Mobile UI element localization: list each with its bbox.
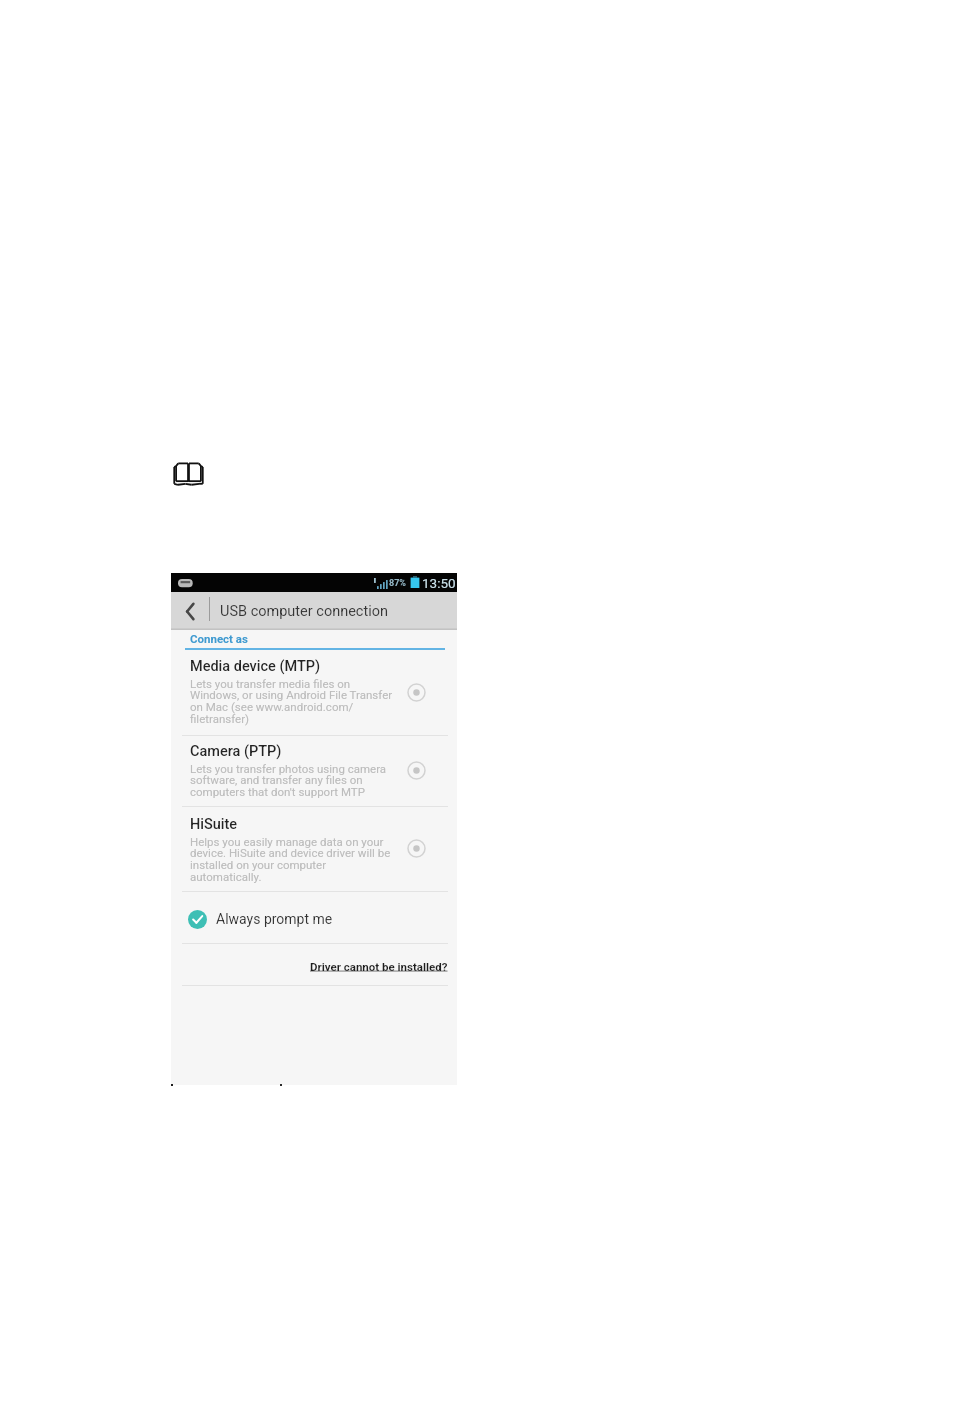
staticText: 13:50 [422, 575, 456, 591]
staticText: Helps you easily manage data on your dev… [190, 835, 397, 884]
button[interactable]: Select Camera (PTP) [405, 759, 427, 781]
button[interactable]: Back [171, 592, 209, 630]
staticText: Driver cannot be installed? [310, 960, 448, 973]
button[interactable]: Select Media device (MTP) [405, 681, 427, 703]
button[interactable]: Camera (PTP) [171, 736, 457, 806]
staticText: Lets you transfer photos using camera so… [190, 762, 397, 799]
button[interactable]: Media device (MTP) [171, 650, 457, 735]
staticText: Camera (PTP) [190, 743, 282, 760]
staticText: Always prompt me [216, 911, 333, 927]
staticText: HiSuite [190, 816, 238, 833]
button[interactable]: HiSuite [171, 807, 457, 891]
staticText: Media device (MTP) [190, 658, 321, 675]
staticText: Lets you transfer media files on Windows… [190, 677, 397, 726]
button[interactable]: Select HiSuite [405, 837, 427, 859]
staticText: Connect as [190, 632, 248, 645]
staticText: USB computer connection [220, 603, 388, 620]
button[interactable]: Driver cannot be installed? [171, 946, 457, 987]
staticText: 87% [389, 578, 406, 589]
button[interactable]: Always prompt me [171, 898, 457, 940]
